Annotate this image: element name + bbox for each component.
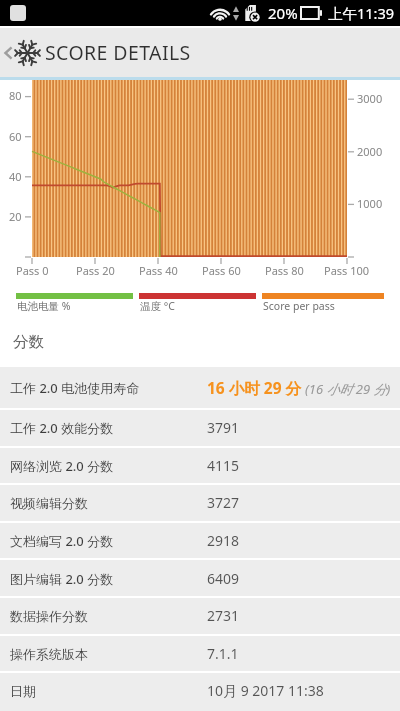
- staticText: 3727: [207, 493, 240, 512]
- button[interactable]: 图片编辑 2.0 分数: [0, 561, 400, 596]
- staticText: 网络浏览 2.0 分数: [10, 457, 114, 475]
- staticText: 操作系统版本: [10, 646, 88, 662]
- staticText: 1000: [357, 196, 383, 211]
- staticText: (16 小时 29 分): [305, 380, 391, 398]
- other: Back: [3, 43, 14, 63]
- button[interactable]: Back: [0, 28, 400, 77]
- staticText: 工作 2.0 效能分数: [10, 419, 114, 437]
- button[interactable]: 网络浏览 2.0 分数: [0, 448, 400, 483]
- staticText: 温度 °C: [140, 299, 175, 313]
- staticText: 工作 2.0 电池使用寿命: [10, 379, 140, 397]
- staticText: 电池电量 %: [17, 299, 71, 313]
- staticText: 40: [9, 169, 22, 184]
- button[interactable]: 文档编写 2.0 分数: [0, 523, 400, 558]
- staticText: 80: [9, 88, 22, 103]
- staticText: 4115: [207, 456, 240, 475]
- staticText: 20: [9, 209, 22, 224]
- staticText: 2731: [207, 606, 240, 625]
- button[interactable]: 视频编辑分数: [0, 485, 400, 520]
- staticText: Pass 20: [76, 263, 115, 278]
- staticText: 2918: [207, 531, 240, 550]
- staticText: 10月 9 2017 11:38: [207, 681, 324, 700]
- button[interactable]: 数据操作分数: [0, 598, 400, 633]
- staticText: 16 小时 29 分: [207, 377, 302, 398]
- staticText: 文档编写 2.0 分数: [10, 532, 114, 550]
- staticText: SCORE DETAILS: [45, 39, 191, 66]
- staticText: Pass 100: [324, 263, 370, 278]
- staticText: 6409: [207, 569, 240, 588]
- staticText: Score per pass: [263, 299, 335, 313]
- staticText: 图片编辑 2.0 分数: [10, 570, 114, 588]
- staticText: 3791: [207, 418, 240, 437]
- staticText: 2000: [357, 144, 383, 159]
- button[interactable]: 操作系统版本: [0, 636, 400, 671]
- staticText: 视频编辑分数: [10, 495, 88, 511]
- staticText: 分数: [13, 332, 44, 352]
- staticText: Pass 80: [265, 263, 304, 278]
- button[interactable]: 工作 2.0 效能分数: [0, 410, 400, 445]
- staticText: Pass 0: [16, 263, 49, 278]
- staticText: 60: [9, 129, 22, 144]
- staticText: 日期: [10, 683, 36, 699]
- staticText: 20%: [268, 3, 298, 23]
- staticText: 数据操作分数: [10, 608, 88, 624]
- staticText: 7.1.1: [207, 644, 239, 663]
- button[interactable]: 日期: [0, 673, 400, 708]
- staticText: 3000: [357, 91, 383, 106]
- button[interactable]: 工作 2.0 电池使用寿命: [0, 367, 400, 408]
- staticText: Pass 40: [139, 263, 178, 278]
- staticText: Pass 60: [202, 263, 241, 278]
- staticText: 上午11:39: [328, 3, 395, 23]
